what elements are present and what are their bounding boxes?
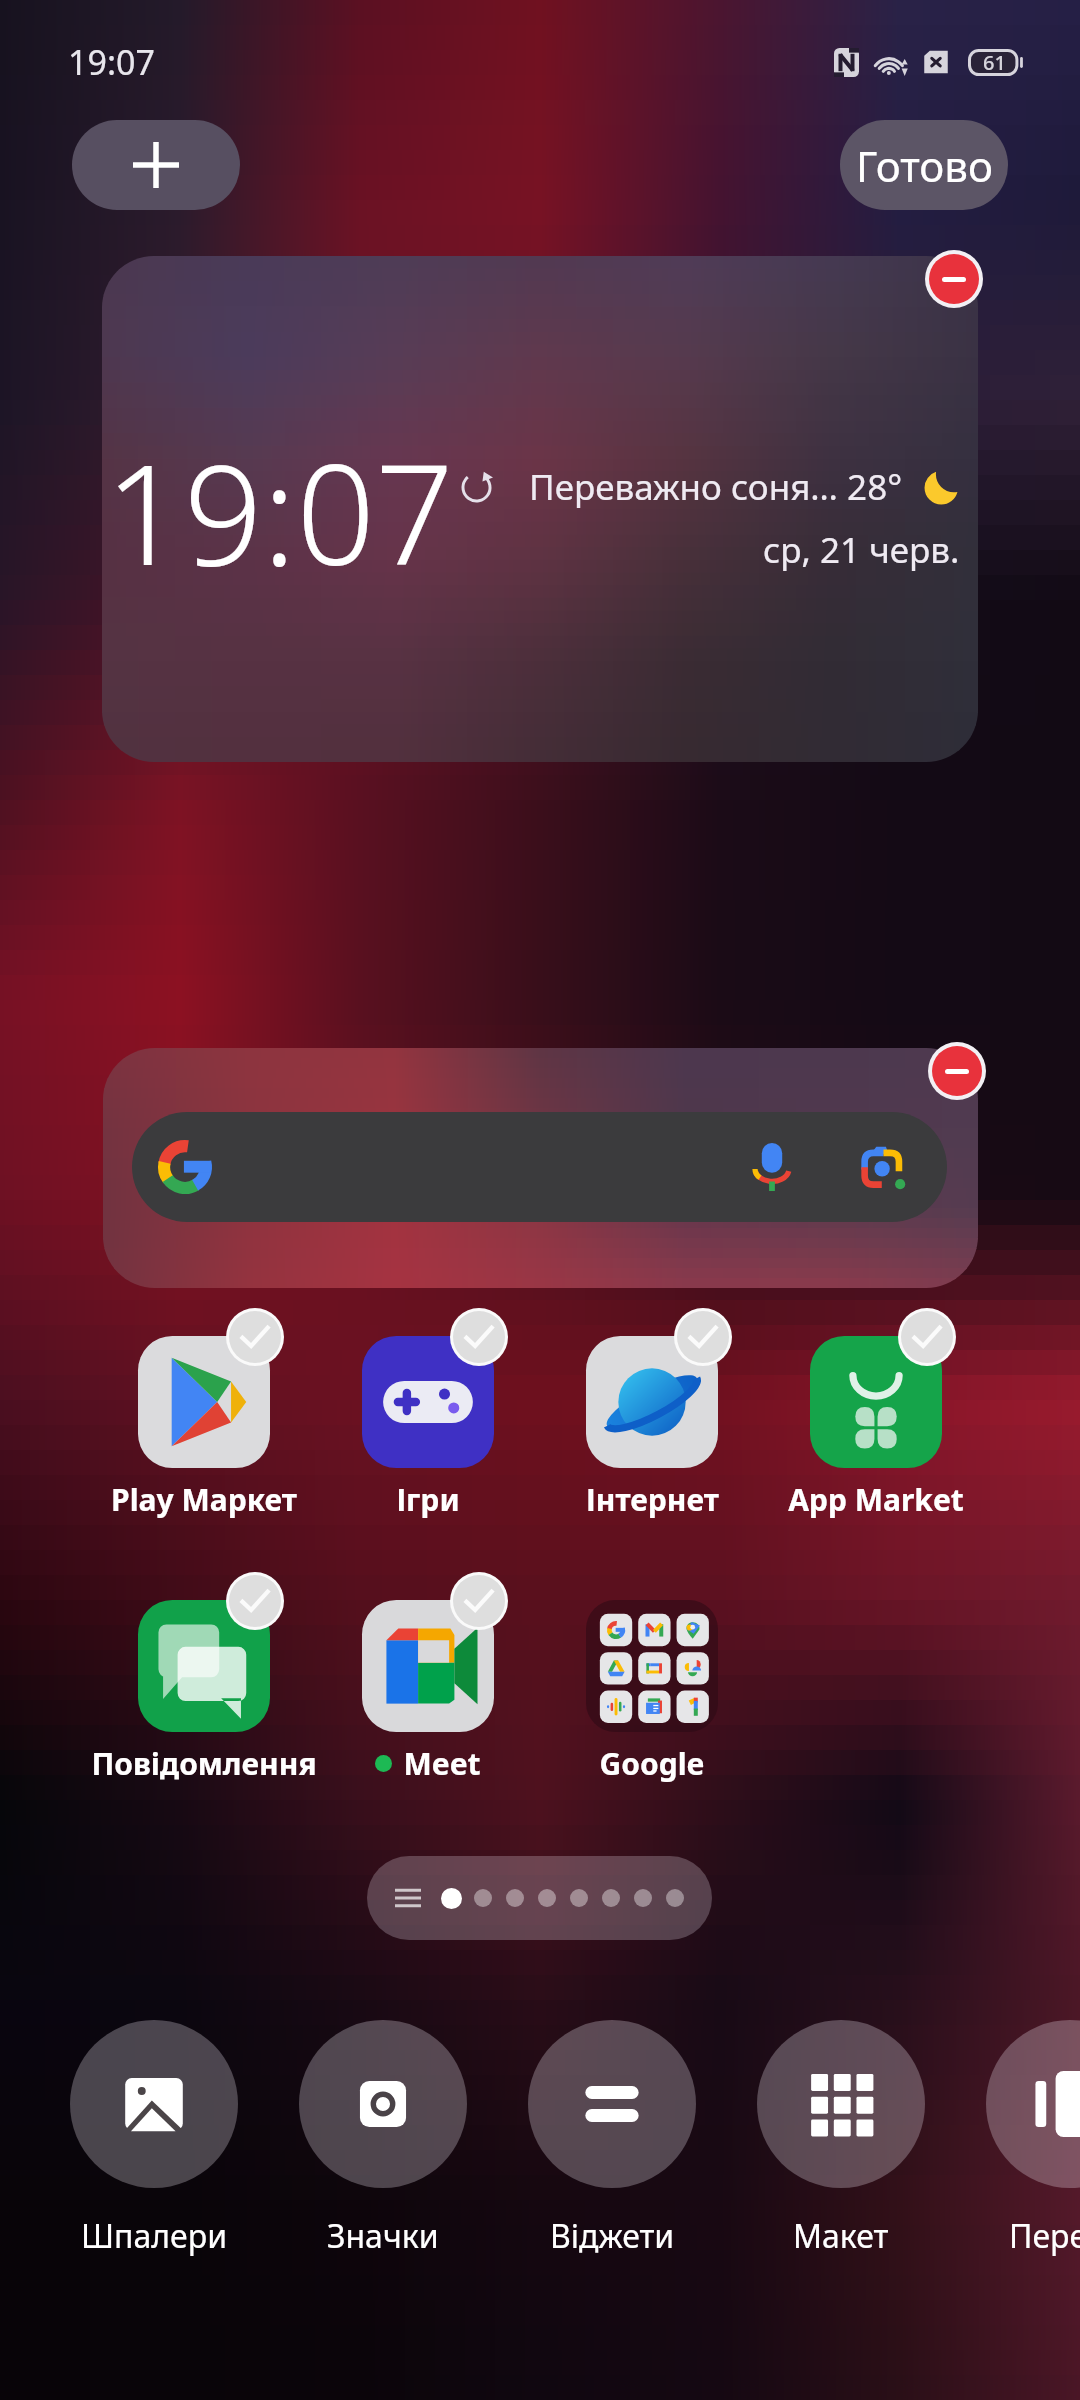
staticText: 61: [983, 49, 1006, 76]
button[interactable]: Add widget: [72, 120, 240, 210]
staticText: Ігри: [396, 1479, 460, 1520]
staticText: Переважно соня… 28°: [529, 463, 903, 511]
staticText: Шпалери: [81, 2214, 228, 2258]
button[interactable]: Ігри: [316, 1330, 540, 1540]
button[interactable]: Віджети: [528, 2020, 696, 2270]
button[interactable]: Готово: [840, 120, 1008, 210]
button[interactable]: [102, 256, 978, 762]
button[interactable]: Повідомлення: [92, 1594, 316, 1804]
button[interactable]: Play Маркет: [92, 1330, 316, 1540]
button[interactable]: Макет: [757, 2020, 925, 2270]
button[interactable]: [103, 1048, 978, 1288]
staticText: Інтернет: [586, 1479, 719, 1520]
button[interactable]: Перехід: [986, 2020, 1080, 2270]
button[interactable]: Meet: [316, 1594, 540, 1804]
button[interactable]: Pages: [367, 1856, 712, 1940]
staticText: 19:07: [105, 417, 454, 605]
button[interactable]: Search: [132, 1112, 947, 1222]
staticText: Meet: [403, 1743, 481, 1784]
button[interactable]: Шпалери: [70, 2020, 238, 2270]
staticText: App Market: [788, 1479, 964, 1520]
staticText: Значки: [327, 2214, 439, 2258]
staticText: Перехід: [1009, 2214, 1080, 2258]
button[interactable]: Значки: [299, 2020, 467, 2270]
button[interactable]: Remove widget: [932, 1046, 982, 1096]
staticText: Готово: [856, 137, 993, 194]
staticText: Play Маркет: [111, 1479, 297, 1520]
staticText: Віджети: [550, 2214, 675, 2258]
staticText: Повідомлення: [91, 1743, 317, 1784]
button[interactable]: Інтернет: [540, 1330, 764, 1540]
staticText: Google: [599, 1743, 705, 1784]
button[interactable]: App Market: [764, 1330, 988, 1540]
staticText: 19:07: [68, 39, 155, 85]
button[interactable]: Google: [540, 1594, 764, 1804]
staticText: ср, 21 черв.: [763, 526, 960, 574]
button[interactable]: Remove widget: [929, 254, 979, 304]
staticText: Макет: [793, 2214, 889, 2258]
